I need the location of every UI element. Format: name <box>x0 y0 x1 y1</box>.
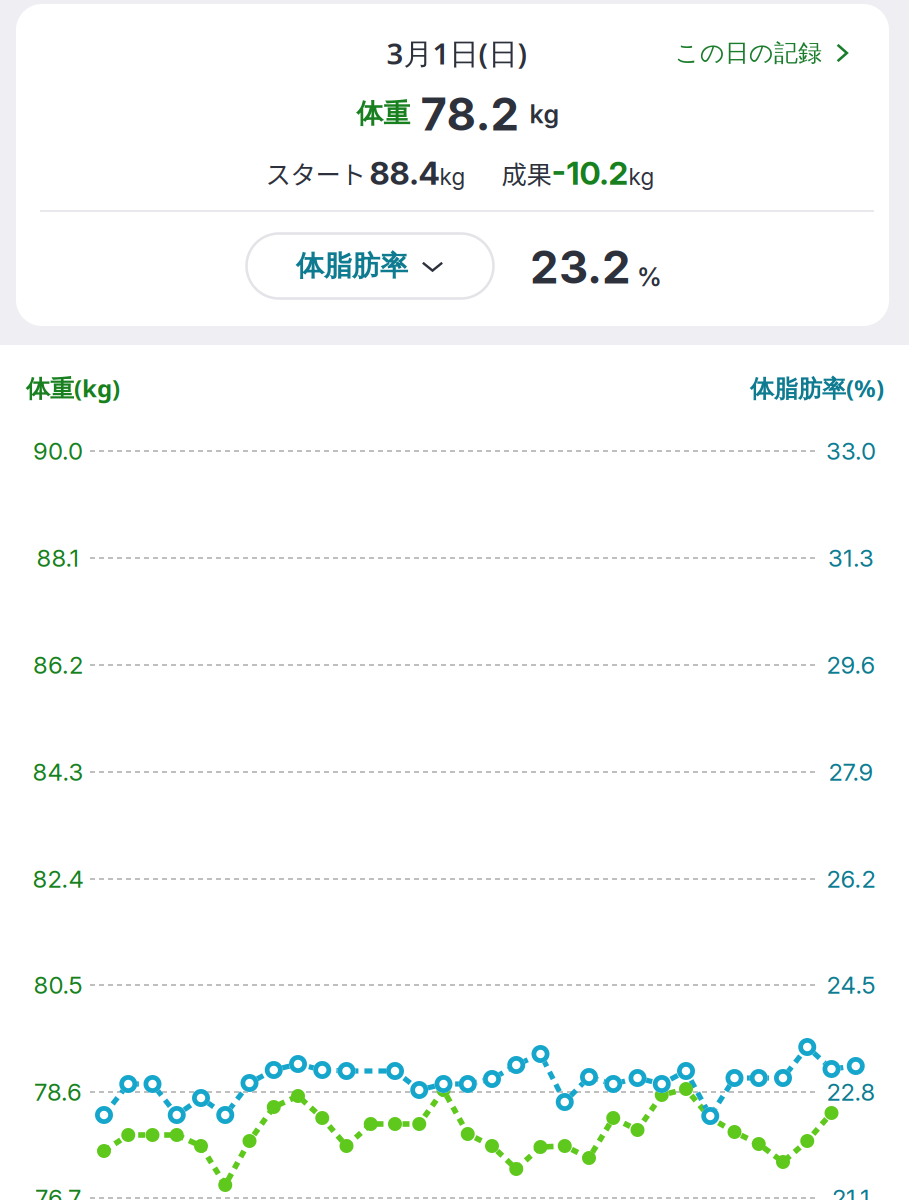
staticText: 31.3 <box>828 543 874 572</box>
staticText: kg <box>628 163 654 190</box>
staticText: 80.5 <box>33 970 82 999</box>
staticText: 76.7 <box>35 1183 81 1200</box>
staticText: 86.2 <box>33 650 83 679</box>
staticText: 27.9 <box>828 757 873 786</box>
staticText: % <box>631 262 662 292</box>
staticText: 26.2 <box>826 864 875 893</box>
staticText: 体脂肪率 <box>296 248 408 284</box>
staticText: 29.6 <box>826 650 875 679</box>
staticText: 成果 <box>501 155 551 191</box>
staticText: 体重 <box>356 97 410 130</box>
staticText: 33.0 <box>826 436 876 465</box>
button[interactable]: 体脂肪率 <box>246 233 493 298</box>
staticText: 体脂肪率(%) <box>750 372 884 404</box>
staticText: 22.8 <box>826 1077 875 1106</box>
staticText: 体重(kg) <box>26 372 120 404</box>
staticText: 82.4 <box>32 864 83 893</box>
staticText: 78.2 <box>420 87 519 141</box>
staticText: 90.0 <box>33 436 83 465</box>
staticText: kg <box>439 163 465 190</box>
staticText: 23.2 <box>530 240 631 294</box>
staticText: kg <box>529 99 559 129</box>
button[interactable]: この日の記録 <box>669 30 859 76</box>
staticText: 24.5 <box>826 970 875 999</box>
staticText: 21.1 <box>832 1183 870 1200</box>
staticText: スタート <box>265 155 365 191</box>
staticText: 88.1 <box>36 543 79 572</box>
staticText: この日の記録 <box>675 38 822 68</box>
staticText: -10.2 <box>551 154 628 192</box>
staticText: 78.6 <box>34 1077 82 1106</box>
staticText: 3月1日(日) <box>386 33 527 73</box>
staticText: 88.4 <box>369 154 439 192</box>
staticText: 84.3 <box>32 757 83 786</box>
